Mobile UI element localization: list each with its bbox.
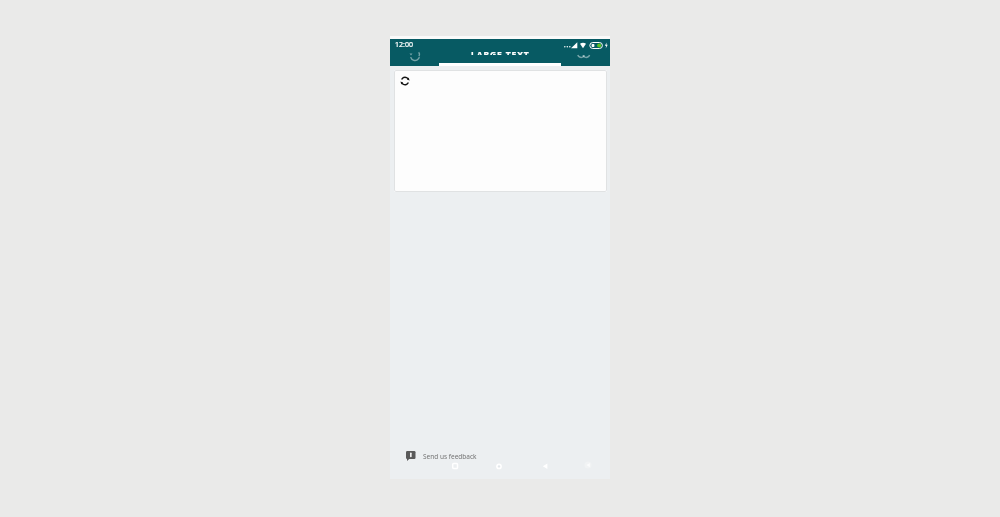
staticText: 12:00: [395, 40, 413, 50]
button[interactable]: [409, 53, 421, 62]
button[interactable]: [540, 461, 550, 471]
staticText: LARGE TEXT: [471, 50, 530, 55]
button[interactable]: Send us feedback: [406, 450, 477, 462]
button[interactable]: [494, 461, 504, 471]
staticText: Send us feedback: [423, 452, 477, 461]
button[interactable]: [394, 70, 607, 192]
button[interactable]: [578, 53, 590, 62]
button[interactable]: [583, 460, 593, 470]
button[interactable]: [450, 461, 460, 471]
